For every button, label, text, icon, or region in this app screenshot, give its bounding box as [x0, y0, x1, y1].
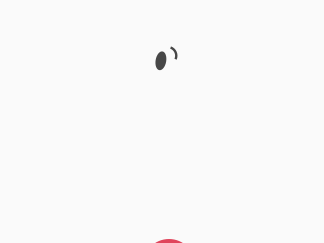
button[interactable]: Record — [143, 239, 195, 243]
